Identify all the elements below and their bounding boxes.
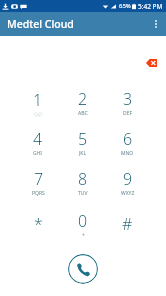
button[interactable]: 2 — [60, 83, 105, 123]
button[interactable]: More options — [146, 12, 166, 36]
button[interactable]: 8 — [60, 163, 105, 204]
button[interactable]: 9 — [105, 163, 150, 204]
staticText: GHI — [33, 150, 43, 157]
staticText: DEF — [123, 110, 133, 117]
button[interactable]: 7 — [16, 163, 60, 204]
staticText: 1 — [33, 89, 43, 111]
staticText: 65% — [119, 2, 131, 10]
staticText: 3 — [123, 88, 133, 110]
staticText: PQRS — [32, 190, 45, 197]
staticText: Medtel Cloud — [7, 17, 74, 31]
staticText: 5:42 PM — [138, 2, 163, 11]
button[interactable]: 6 — [105, 123, 150, 163]
staticText: 2 — [78, 88, 88, 110]
staticText: 0 — [78, 210, 88, 232]
button[interactable]: # — [105, 204, 150, 246]
staticText: 7 — [34, 168, 44, 190]
staticText: MNO — [121, 150, 134, 157]
staticText: 5 — [78, 128, 88, 150]
staticText: ABC — [78, 110, 88, 117]
staticText: JKL — [79, 150, 87, 157]
staticText: 6 — [123, 128, 133, 150]
button[interactable]: 3 — [105, 83, 150, 123]
staticText: TUV — [78, 190, 88, 197]
button[interactable]: 1 — [16, 83, 60, 123]
staticText: + — [82, 232, 85, 239]
staticText: # — [122, 213, 133, 235]
button[interactable]: Delete — [140, 52, 162, 74]
staticText: WXYZ — [121, 190, 135, 197]
staticText: 9 — [123, 168, 133, 190]
staticText: * — [34, 213, 43, 235]
button[interactable]: 5 — [60, 123, 105, 163]
button[interactable]: Call — [68, 254, 98, 284]
button[interactable]: 4 — [16, 123, 60, 163]
button[interactable]: 0 — [60, 204, 105, 246]
staticText: 8 — [78, 168, 88, 190]
staticText: 4 — [33, 128, 43, 150]
button[interactable]: * — [16, 204, 60, 246]
